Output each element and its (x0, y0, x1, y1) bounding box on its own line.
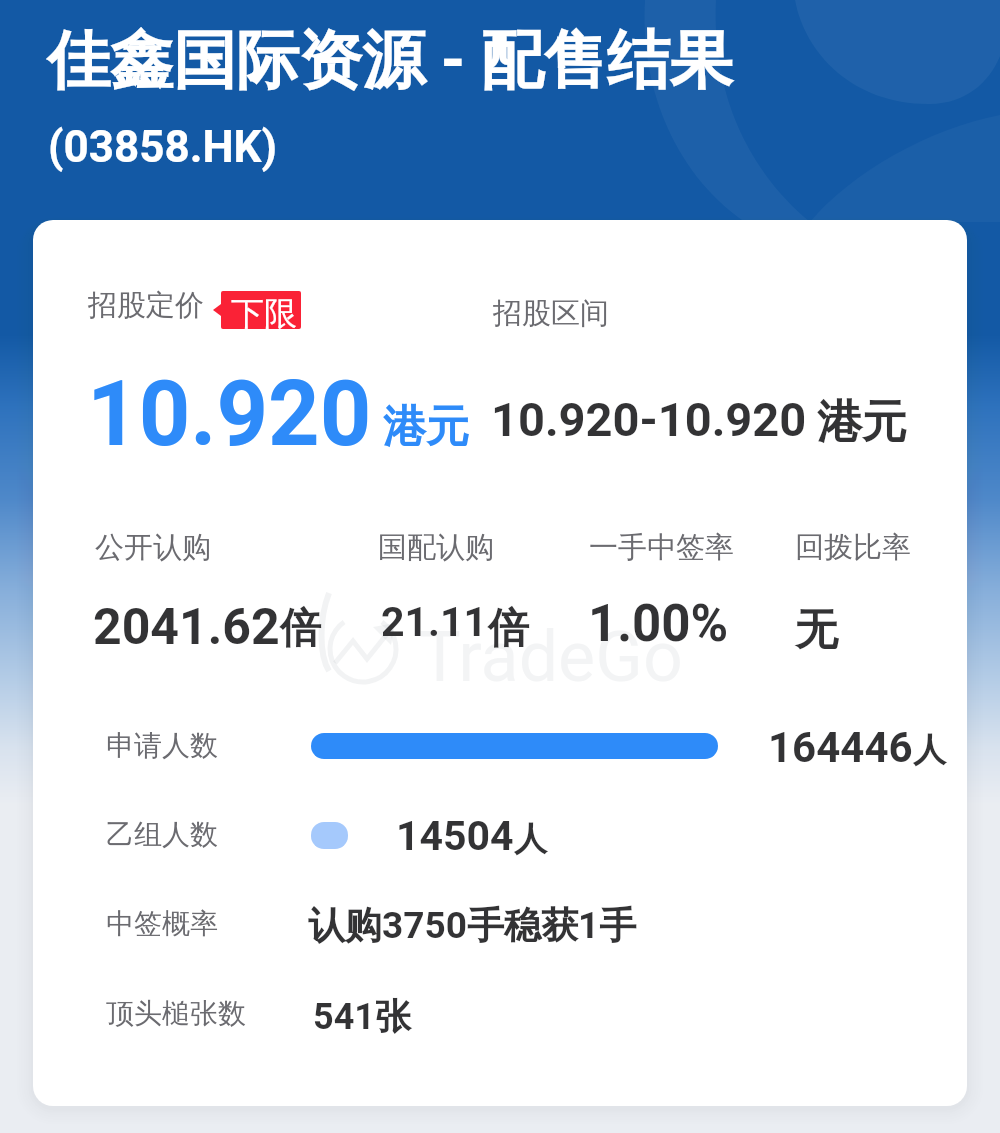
staticText: 认购3750手稳获1手 (308, 902, 637, 949)
button[interactable]: 中签概率 认购3750手稳获1手 (33, 886, 967, 976)
staticText: 164446 (768, 723, 913, 772)
staticText: 佳鑫国际资源 - 配售结果 (47, 21, 733, 100)
staticText: 1.00% (588, 594, 729, 654)
staticText: 招股区间 (493, 295, 609, 332)
staticText: 国配认购 (378, 529, 494, 566)
staticText: 倍 (280, 603, 321, 655)
staticText: 中签概率 (106, 906, 218, 941)
staticText: 下限 (231, 293, 297, 329)
staticText: 港元 (383, 400, 469, 454)
button[interactable]: 公开认购 (73, 515, 933, 635)
staticText: 申请人数 (106, 728, 218, 763)
staticText: 倍 (488, 603, 529, 655)
button[interactable]: 顶头槌张数 541张 (33, 976, 967, 1066)
button[interactable]: 乙组人数 14504人 (33, 796, 967, 886)
staticText: 人 (913, 729, 946, 771)
button[interactable]: 佳鑫国际资源 - 配售结果 (40, 10, 760, 180)
staticText: TradeGo (419, 616, 683, 698)
staticText: 一手中签率 (589, 529, 734, 566)
staticText: 招股定价 (88, 287, 204, 324)
staticText: 541张 (313, 994, 411, 1039)
staticText: 2041.62 (93, 598, 280, 657)
button[interactable]: 招股区间 (478, 275, 928, 460)
staticText: 乙组人数 (106, 817, 218, 852)
staticText: 10.920 (87, 362, 372, 467)
button[interactable]: 招股定价 (73, 275, 473, 460)
staticText: 回拨比率 (795, 529, 911, 566)
staticText: 21.11 (381, 598, 488, 646)
staticText: 港元 (817, 394, 907, 451)
staticText: 10.920-10.920 (491, 392, 807, 447)
button[interactable]: 下限 lower limit tag (213, 291, 301, 329)
staticText: 14504 (396, 812, 514, 860)
staticText: 顶头槌张数 (106, 996, 246, 1031)
staticText: (03858.HK) (48, 121, 278, 173)
staticText: 无 (795, 603, 838, 657)
button[interactable]: 申请人数 164446人 (33, 706, 967, 796)
staticText: 公开认购 (95, 529, 211, 566)
staticText: 人 (514, 818, 547, 860)
